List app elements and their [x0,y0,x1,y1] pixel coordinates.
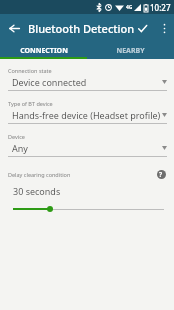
staticText: Bluetooth Detection [28,21,135,36]
button[interactable]: Connection state [0,67,174,91]
staticText: Device connected [12,76,162,88]
button[interactable]: Type of BT device [0,100,174,124]
staticText: NEARBY [116,46,145,56]
button[interactable]: Delay slider [0,203,174,215]
staticText: Hands-free device (Headset profile) [12,109,162,121]
button[interactable]: NEARBY [87,42,174,59]
staticText: Type of BT device [8,100,53,107]
button[interactable]: Confirm [130,16,154,40]
staticText: ? [159,170,163,179]
staticText: Connection state [8,67,52,74]
button[interactable]: Back [2,16,26,40]
button[interactable]: More options [154,18,174,38]
staticText: Any [12,142,162,154]
staticText: Delay clearing condition [8,171,154,178]
staticText: CONNECTION [20,46,68,56]
button[interactable]: Device [0,133,174,157]
staticText: 10:27 [150,2,171,13]
staticText: 30 seconds [13,185,61,197]
staticText: 4G [126,4,133,11]
button[interactable]: Help [154,167,168,181]
button[interactable]: CONNECTION [0,42,87,59]
staticText: Device [8,133,25,140]
